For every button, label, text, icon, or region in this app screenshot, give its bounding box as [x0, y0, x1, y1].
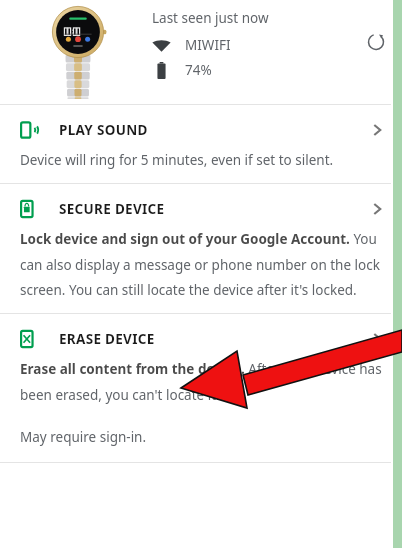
staticText: Erase all content from the device. After… — [20, 360, 382, 404]
staticText: May require sign-in. — [20, 428, 147, 446]
staticText: PLAY SOUND — [59, 121, 148, 139]
button[interactable]: Device will ring for 5 minutes, even if … — [0, 145, 402, 183]
staticText: MIWIFI — [185, 36, 231, 54]
staticText: SECURE DEVICE — [59, 200, 165, 218]
staticText: Device will ring for 5 minutes, even if … — [20, 151, 334, 169]
staticText: Last seen just now — [152, 9, 269, 27]
button[interactable]: SECURE DEVICE — [0, 184, 402, 224]
staticText: Lock device and sign out of your Google … — [20, 230, 384, 299]
button[interactable]: PLAY SOUND — [0, 105, 402, 145]
button[interactable]: Lock device and sign out of your Google … — [0, 224, 402, 313]
button[interactable]: Refresh — [364, 30, 388, 54]
other: Play sound — [368, 121, 386, 139]
button[interactable]: Erase all content from the device. After… — [0, 354, 402, 414]
staticText: 74% — [185, 61, 212, 79]
other: Secure device — [368, 200, 386, 218]
staticText: ERASE DEVICE — [59, 330, 155, 348]
other: Erase device — [368, 330, 386, 348]
button[interactable]: ERASE DEVICE — [0, 314, 402, 354]
